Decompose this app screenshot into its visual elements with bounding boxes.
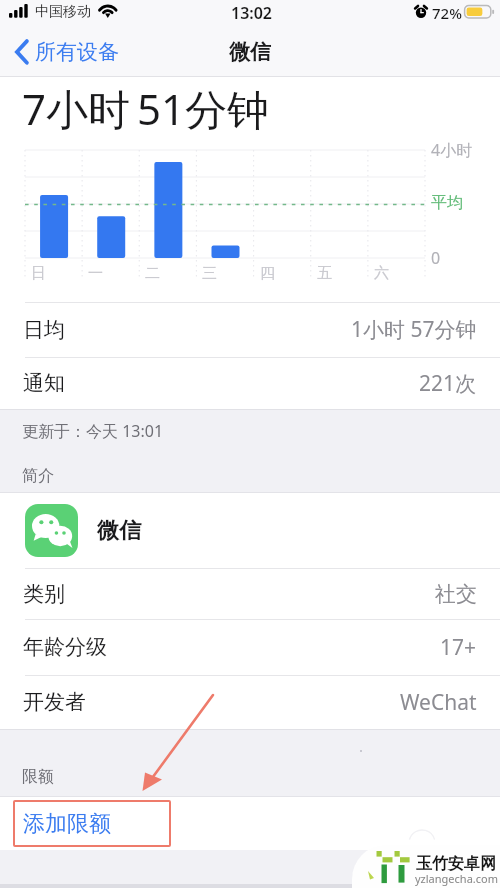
button[interactable]: 微信 — [0, 493, 500, 568]
staticText: 三 — [202, 264, 217, 283]
staticText: yzlangecha.com — [415, 871, 498, 886]
staticText: 日 — [31, 264, 46, 283]
staticText: 0 — [431, 247, 441, 269]
staticText: 1小时 57分钟 — [351, 315, 477, 344]
staticText: 年龄分级 — [23, 634, 107, 660]
staticText: 简介 — [22, 466, 54, 486]
button[interactable]: 通知 — [0, 357, 500, 409]
staticText: 添加限额 — [23, 810, 111, 838]
staticText: 四 — [260, 264, 275, 283]
staticText: 221次 — [419, 369, 477, 398]
staticText: 限额 — [22, 767, 54, 787]
staticText: 社交 — [435, 581, 477, 607]
staticText: 平均 — [431, 193, 463, 213]
staticText: 五 — [317, 264, 332, 283]
staticText: 微信 — [97, 517, 141, 545]
staticText: 微信 — [229, 39, 271, 65]
staticText: 二 — [145, 264, 160, 283]
staticText: 所有设备 — [35, 39, 119, 65]
staticText: 17+ — [440, 633, 477, 662]
button[interactable]: 日均 — [0, 302, 500, 357]
staticText: 72% — [432, 3, 462, 23]
staticText: 开发者 — [23, 689, 86, 715]
staticText: 中国移动 — [35, 3, 91, 21]
staticText: 7小时 51分钟 — [22, 80, 270, 137]
button[interactable]: 返回所有设备 — [9, 35, 127, 69]
staticText: 4小时 — [431, 139, 473, 161]
staticText: 更新于：今天 13:01 — [22, 420, 164, 442]
button[interactable]: 类别 — [0, 568, 500, 619]
button[interactable]: 开发者 — [0, 675, 500, 729]
staticText: 六 — [374, 264, 389, 283]
button[interactable]: 年龄分级 — [0, 619, 500, 675]
staticText: 通知 — [23, 370, 65, 396]
staticText: 类别 — [23, 581, 65, 607]
staticText: 玉竹安卓网 — [416, 854, 496, 874]
staticText: 一 — [88, 264, 103, 283]
staticText: WeChat — [400, 688, 477, 717]
staticText: 13:02 — [231, 2, 273, 24]
button[interactable]: 添加限额 — [0, 797, 500, 850]
staticText: 日均 — [23, 317, 65, 343]
